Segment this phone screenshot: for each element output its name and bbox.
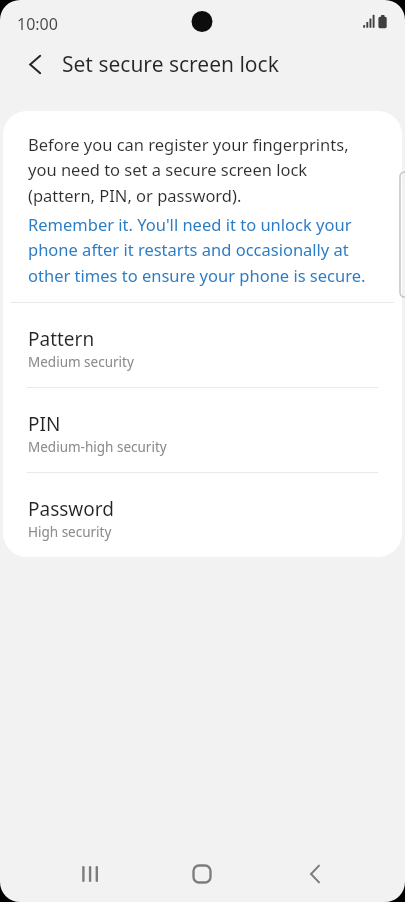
staticText: 10:00 — [17, 13, 58, 35]
button[interactable] — [66, 850, 114, 898]
button[interactable]: Pattern — [3, 303, 402, 387]
button[interactable]: PIN — [3, 388, 402, 472]
staticText: Before you can register your fingerprint… — [28, 133, 349, 207]
button[interactable]: Password — [3, 473, 402, 557]
staticText: PIN — [28, 411, 61, 437]
staticText: High security — [28, 523, 112, 541]
staticText: Password — [28, 496, 114, 522]
staticText: Medium-high security — [28, 438, 167, 456]
button[interactable] — [292, 850, 340, 898]
staticText: Medium security — [28, 353, 134, 371]
button[interactable] — [178, 850, 226, 898]
staticText: Pattern — [28, 326, 95, 352]
staticText: Remember it. You'll need it to unlock yo… — [28, 213, 366, 287]
staticText: Set secure screen lock — [62, 50, 279, 79]
button[interactable] — [16, 44, 56, 84]
